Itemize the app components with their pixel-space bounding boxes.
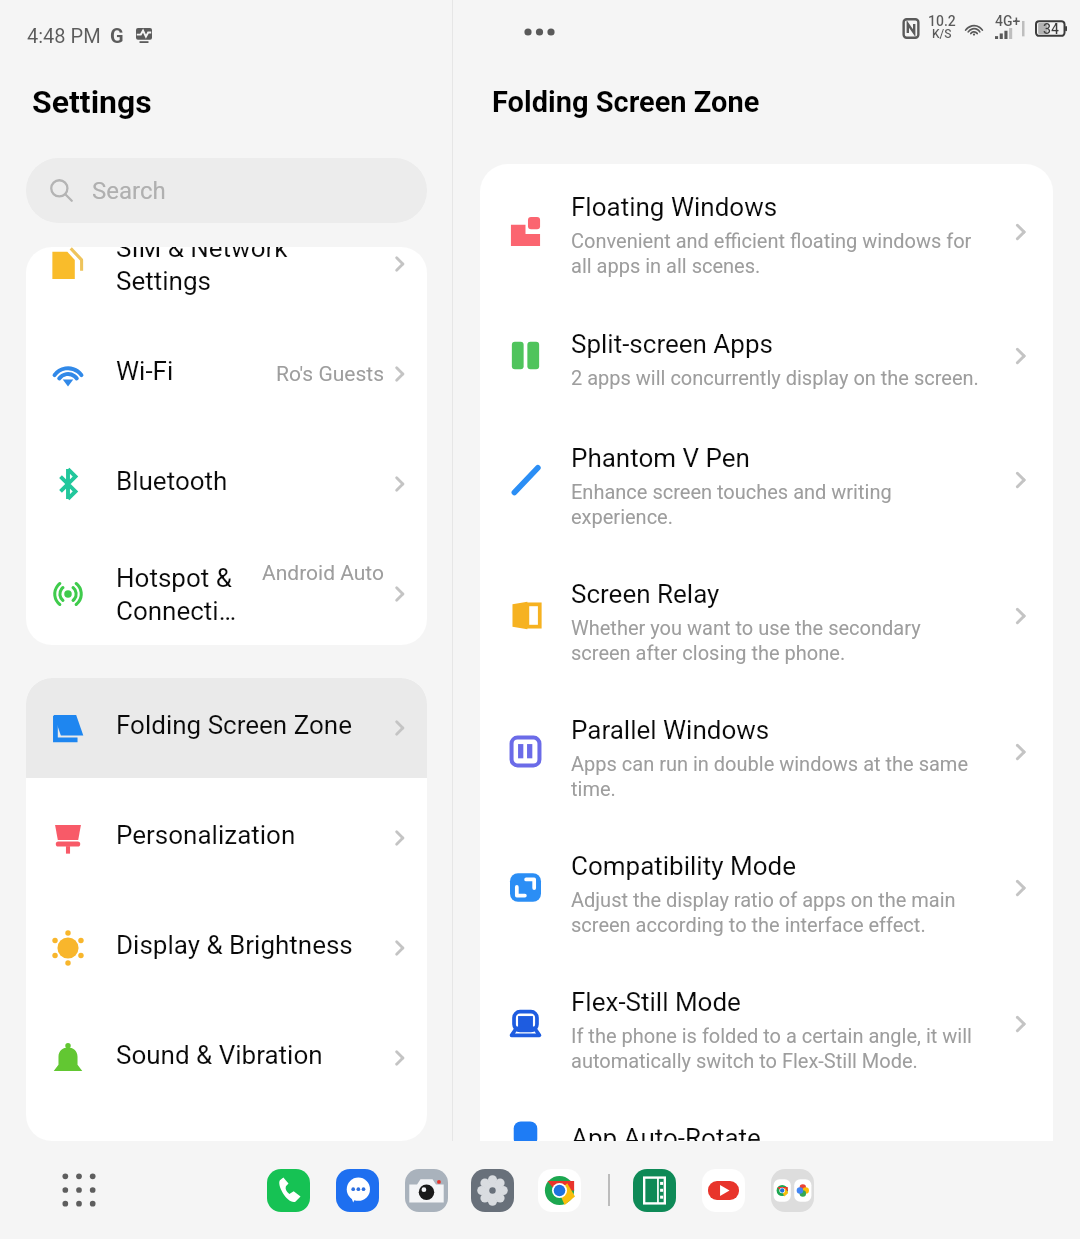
staticText: Settings [32,83,152,121]
button[interactable]: More options [521,22,555,42]
staticText: 34 [1043,21,1059,37]
button[interactable]: Flex-Still Mode [480,956,1053,1092]
staticText: Search [92,177,166,205]
staticText: Folding Screen Zone [492,85,760,119]
button[interactable]: Camera [405,1169,448,1212]
button[interactable]: Search [26,158,427,223]
button[interactable]: App Auto-Rotate [480,1092,1053,1141]
staticText: 4G+ [995,13,1021,29]
staticText: Apps can run in double windows at the sa… [571,752,968,801]
staticText: K/S [932,27,952,41]
staticText: Flex-Still Mode [571,987,741,1017]
button[interactable]: Chrome [538,1169,581,1212]
staticText: Display & Brightness [116,930,366,960]
staticText: Parallel Windows [571,715,770,745]
button[interactable]: Apps [771,1169,814,1212]
button[interactable]: Display & Brightness [26,893,427,1003]
staticText: Whether you want to use the secondary sc… [571,616,921,665]
button[interactable]: Screen Relay [480,548,1053,684]
button[interactable]: Floating Windows [480,164,1053,300]
button[interactable]: Compatibility Mode [480,820,1053,956]
staticText: If the phone is folded to a certain angl… [571,1024,972,1073]
staticText: Folding Screen Zone [116,710,366,740]
staticText: App Auto-Rotate [571,1123,761,1141]
button[interactable]: Parallel Windows [480,684,1053,820]
staticText: Adjust the display ratio of apps on the … [571,888,956,937]
staticText: Hotspot & Connecti… [116,563,366,626]
button[interactable]: Phantom V Pen [480,412,1053,548]
button[interactable]: Phone [267,1169,310,1212]
staticText: Screen Relay [571,579,720,609]
staticText: Personalization [116,820,366,850]
staticText: G [110,24,124,47]
button[interactable]: Bluetooth [26,429,427,539]
staticText: Convenient and efficient floating window… [571,229,972,278]
staticText: 2 apps will concurrently display on the … [571,366,979,389]
staticText: Floating Windows [571,192,778,222]
staticText: 10.2 [928,13,956,29]
button[interactable]: Wi-Fi [26,319,427,429]
button[interactable]: Settings [471,1169,514,1212]
staticText: Wi-Fi [116,356,366,386]
staticText: Split-screen Apps [571,329,773,359]
staticText: 4:48 PM [27,24,101,47]
staticText: Android Auto [262,561,384,586]
button[interactable]: Hotspot & Connecti… [26,539,427,607]
staticText: Bluetooth [116,466,366,496]
button[interactable]: SIM & Network Settings [26,247,427,319]
staticText: SIM & Network Settings [116,247,366,296]
button[interactable]: App drawer [60,1171,98,1209]
button[interactable]: YouTube [702,1169,745,1212]
staticText: Compatibility Mode [571,851,796,881]
button[interactable]: Split-screen Apps [480,300,1053,412]
staticText: Phantom V Pen [571,443,750,473]
button[interactable]: Personalization [26,778,427,893]
button[interactable]: Folding Screen Zone [26,678,427,778]
staticText: Sound & Vibration [116,1040,366,1070]
staticText: Ro's Guests [276,362,384,387]
button[interactable]: Notes [633,1169,676,1212]
button[interactable]: Sound & Vibration [26,1003,427,1113]
button[interactable]: Messages [336,1169,379,1212]
staticText: Enhance screen touches and writing exper… [571,480,892,529]
